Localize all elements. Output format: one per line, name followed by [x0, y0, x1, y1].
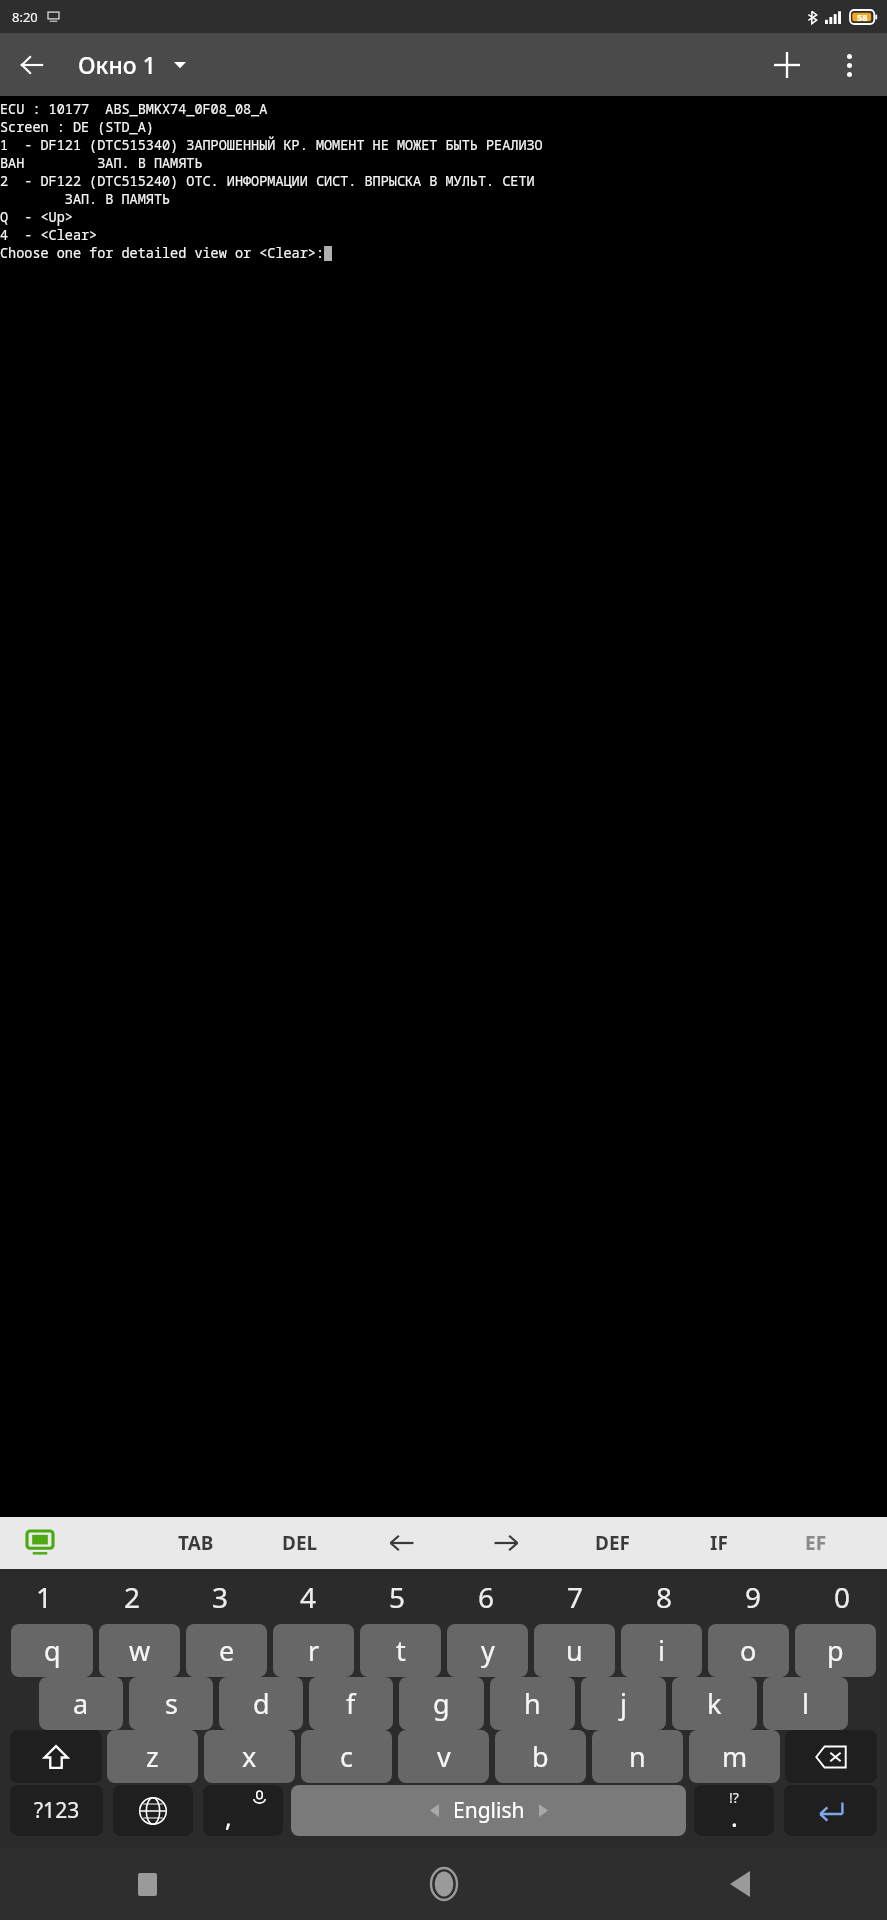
button[interactable]: 9 — [709, 1569, 798, 1624]
button[interactable]: k — [672, 1677, 757, 1730]
button[interactable]: Add window — [763, 41, 811, 89]
button[interactable]: 6 — [442, 1569, 531, 1624]
button[interactable]: q — [11, 1624, 93, 1677]
staticText: Q - <Up> — [0, 208, 73, 226]
staticText: v — [437, 1738, 451, 1775]
staticText: 8:20 — [12, 8, 38, 26]
button[interactable]: 1 — [0, 1569, 88, 1624]
staticText: k — [707, 1685, 722, 1722]
button[interactable]: f — [309, 1677, 393, 1730]
button[interactable]: English — [291, 1785, 686, 1836]
staticText: 0 — [834, 1578, 851, 1616]
staticText: 3 — [212, 1578, 229, 1616]
button[interactable]: e — [186, 1624, 267, 1677]
button[interactable]: 3 — [176, 1569, 264, 1624]
staticText: z — [146, 1738, 159, 1775]
staticText: , — [225, 1800, 232, 1834]
button[interactable]: g — [399, 1677, 484, 1730]
button[interactable]: u — [534, 1624, 615, 1677]
button[interactable]: Period — [694, 1785, 774, 1836]
staticText: p — [827, 1632, 844, 1669]
button[interactable]: DEF — [585, 1522, 640, 1564]
button[interactable]: b — [495, 1730, 586, 1783]
button[interactable]: More options — [825, 41, 873, 89]
staticText: Screen : DE (STD_A) — [0, 118, 154, 136]
button[interactable]: o — [708, 1624, 789, 1677]
staticText: DEL — [282, 1530, 318, 1556]
button[interactable]: IF — [700, 1522, 738, 1564]
button[interactable]: i — [621, 1624, 702, 1677]
button[interactable]: x — [204, 1730, 295, 1783]
staticText: IF — [710, 1530, 728, 1556]
button[interactable]: TAB — [168, 1522, 224, 1564]
staticText: ?123 — [34, 1796, 80, 1825]
button[interactable]: 7 — [531, 1569, 620, 1624]
button[interactable]: Recent apps — [0, 1848, 295, 1920]
button[interactable]: c — [301, 1730, 392, 1783]
staticText: w — [129, 1632, 151, 1669]
staticText: m — [722, 1738, 748, 1775]
button[interactable]: s — [129, 1677, 213, 1730]
button[interactable]: Right arrow — [484, 1521, 528, 1565]
button[interactable]: Back — [592, 1848, 887, 1920]
button[interactable]: Symbols — [10, 1785, 103, 1836]
button[interactable]: Change language — [113, 1785, 193, 1836]
staticText: EF — [805, 1530, 827, 1556]
staticText: 7 — [567, 1578, 584, 1616]
button[interactable]: EF — [795, 1522, 837, 1564]
staticText: 9 — [745, 1578, 762, 1616]
button[interactable]: l — [763, 1677, 848, 1730]
button[interactable]: 5 — [353, 1569, 442, 1624]
button[interactable]: z — [107, 1730, 198, 1783]
button[interactable]: w — [99, 1624, 180, 1677]
staticText: e — [219, 1632, 235, 1669]
staticText: q — [44, 1632, 61, 1669]
button[interactable]: Backspace — [785, 1730, 877, 1783]
staticText: g — [433, 1685, 450, 1722]
staticText: h — [524, 1685, 541, 1722]
staticText: 4 — [300, 1578, 317, 1616]
button[interactable]: n — [592, 1730, 683, 1783]
button[interactable]: v — [398, 1730, 489, 1783]
staticText: ЗАП. В ПАМЯТЬ — [0, 190, 171, 208]
button[interactable]: m — [689, 1730, 780, 1783]
button[interactable]: d — [219, 1677, 303, 1730]
button[interactable]: DEL — [272, 1522, 328, 1564]
button[interactable]: y — [447, 1624, 528, 1677]
staticText: ВАН ЗАП. В ПАМЯТЬ — [0, 154, 203, 172]
staticText: u — [566, 1632, 583, 1669]
button[interactable]: Окно 1 — [74, 41, 190, 88]
staticText: t — [396, 1632, 406, 1669]
staticText: 2 - DF122 (DTC515240) ОТС. ИНФОРМАЦИИ СИ… — [0, 172, 535, 190]
button[interactable]: Left arrow — [380, 1521, 424, 1565]
staticText: 2 — [124, 1578, 141, 1616]
button[interactable]: a — [39, 1677, 123, 1730]
staticText: c — [340, 1738, 353, 1775]
staticText: 5 — [389, 1578, 406, 1616]
button[interactable]: r — [273, 1624, 354, 1677]
staticText: s — [165, 1685, 178, 1722]
staticText: . — [731, 1800, 738, 1834]
button[interactable]: Terminal display — [18, 1521, 62, 1565]
button[interactable]: 2 — [88, 1569, 176, 1624]
staticText: English — [453, 1796, 525, 1825]
button[interactable]: Shift — [10, 1730, 102, 1783]
button[interactable]: Comma — [203, 1785, 283, 1836]
staticText: 1 — [36, 1578, 53, 1616]
button[interactable]: 4 — [264, 1569, 353, 1624]
button[interactable]: t — [360, 1624, 441, 1677]
button[interactable]: p — [795, 1624, 876, 1677]
staticText: 8 — [656, 1578, 673, 1616]
staticText: Окно 1 — [78, 49, 156, 80]
staticText: l — [802, 1685, 809, 1722]
button[interactable]: 8 — [620, 1569, 709, 1624]
button[interactable]: j — [581, 1677, 666, 1730]
button[interactable]: Back — [8, 41, 56, 89]
staticText: a — [73, 1685, 89, 1722]
button[interactable]: Enter — [784, 1785, 877, 1836]
button[interactable]: 0 — [798, 1569, 887, 1624]
staticText: 4 - <Clear> — [0, 226, 98, 244]
button[interactable]: h — [490, 1677, 575, 1730]
staticText: y — [481, 1632, 495, 1669]
button[interactable]: Home — [296, 1848, 591, 1920]
